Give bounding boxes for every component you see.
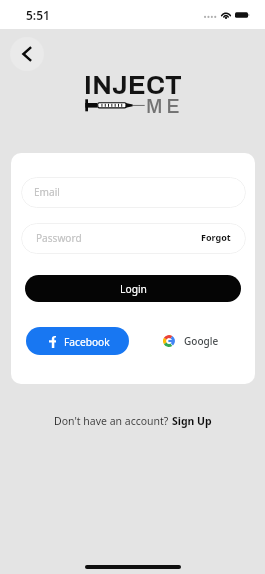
staticText: ME <box>146 96 184 117</box>
staticText: Facebook <box>64 335 110 349</box>
button[interactable]: Email <box>21 177 246 208</box>
button[interactable]: Login <box>25 275 241 302</box>
staticText: 5:51 <box>26 7 50 23</box>
staticText: Forgot <box>201 231 231 243</box>
staticText: INJECT <box>84 71 182 99</box>
staticText: Sign Up <box>172 414 212 428</box>
button[interactable]: Facebook <box>26 327 129 355</box>
staticText: Email <box>34 185 60 199</box>
button[interactable]: Back <box>10 37 44 71</box>
staticText: Don't have an account? <box>54 414 172 428</box>
staticText: Google <box>184 334 219 348</box>
staticText: Password <box>36 231 82 245</box>
staticText: Login <box>120 282 147 296</box>
button[interactable]: Google <box>163 327 219 355</box>
button[interactable]: Password <box>21 223 246 254</box>
